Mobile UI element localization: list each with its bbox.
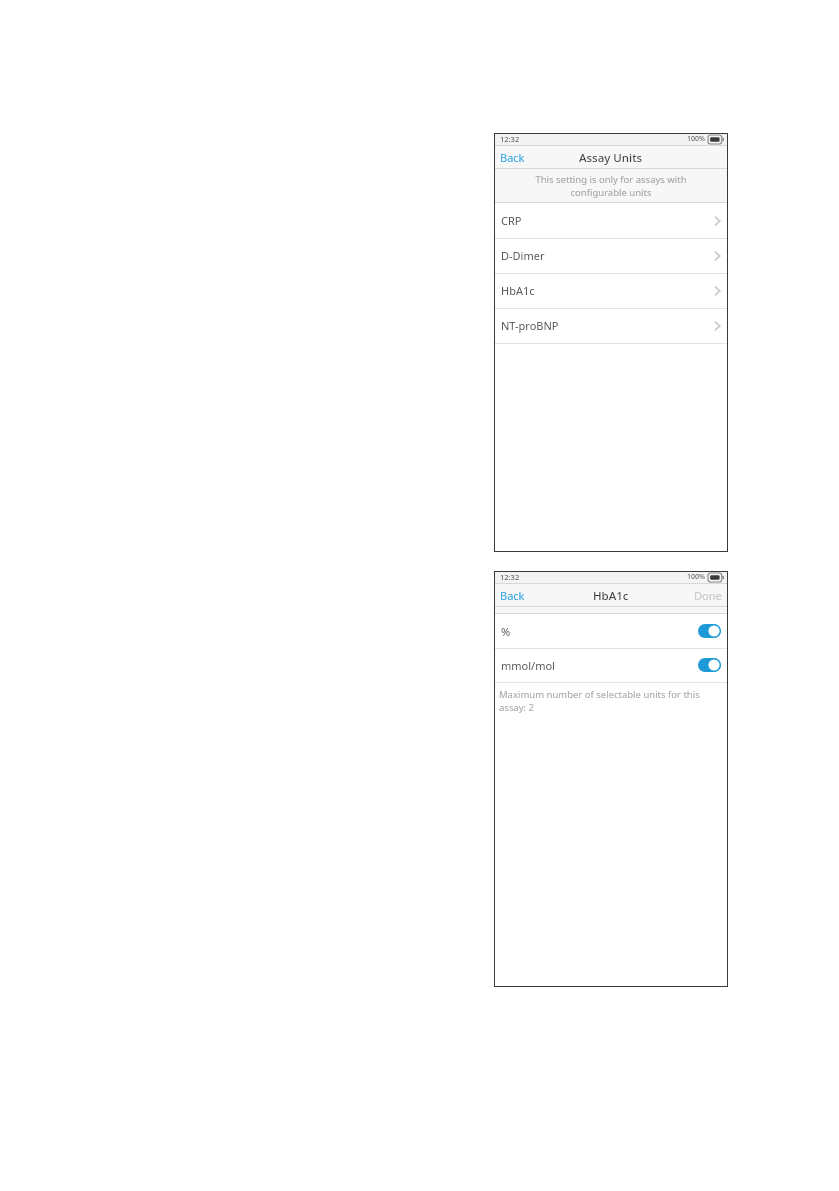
button[interactable]: mmol/mol unit toggle, on xyxy=(494,648,728,682)
staticText: HbA1c xyxy=(501,283,535,298)
staticText: % xyxy=(501,624,511,639)
button[interactable]: % unit toggle, on xyxy=(494,614,728,648)
staticText: Done xyxy=(694,588,722,603)
staticText: D-Dimer xyxy=(501,248,545,263)
staticText: 100% xyxy=(687,134,705,144)
button[interactable]: D-Dimer xyxy=(494,238,728,273)
staticText: Back xyxy=(500,588,525,603)
staticText: 12:32 xyxy=(500,134,520,144)
staticText: Back xyxy=(500,150,525,165)
button[interactable]: Done xyxy=(688,584,728,607)
button[interactable]: HbA1c xyxy=(494,273,728,308)
button[interactable]: Back xyxy=(494,584,531,607)
staticText: CRP xyxy=(501,213,522,228)
button[interactable]: Back xyxy=(494,146,531,169)
staticText: mmol/mol xyxy=(501,658,555,673)
button[interactable]: NT-proBNP xyxy=(494,308,728,343)
staticText: HbA1c xyxy=(593,588,629,604)
staticText: Assay Units xyxy=(579,150,643,166)
staticText: 100% xyxy=(687,572,705,582)
button[interactable]: CRP xyxy=(494,203,728,238)
staticText: This setting is only for assays with con… xyxy=(504,173,718,199)
staticText: 12:32 xyxy=(500,572,520,582)
staticText: NT-proBNP xyxy=(501,318,559,333)
staticText: Maximum number of selectable units for t… xyxy=(499,688,700,713)
